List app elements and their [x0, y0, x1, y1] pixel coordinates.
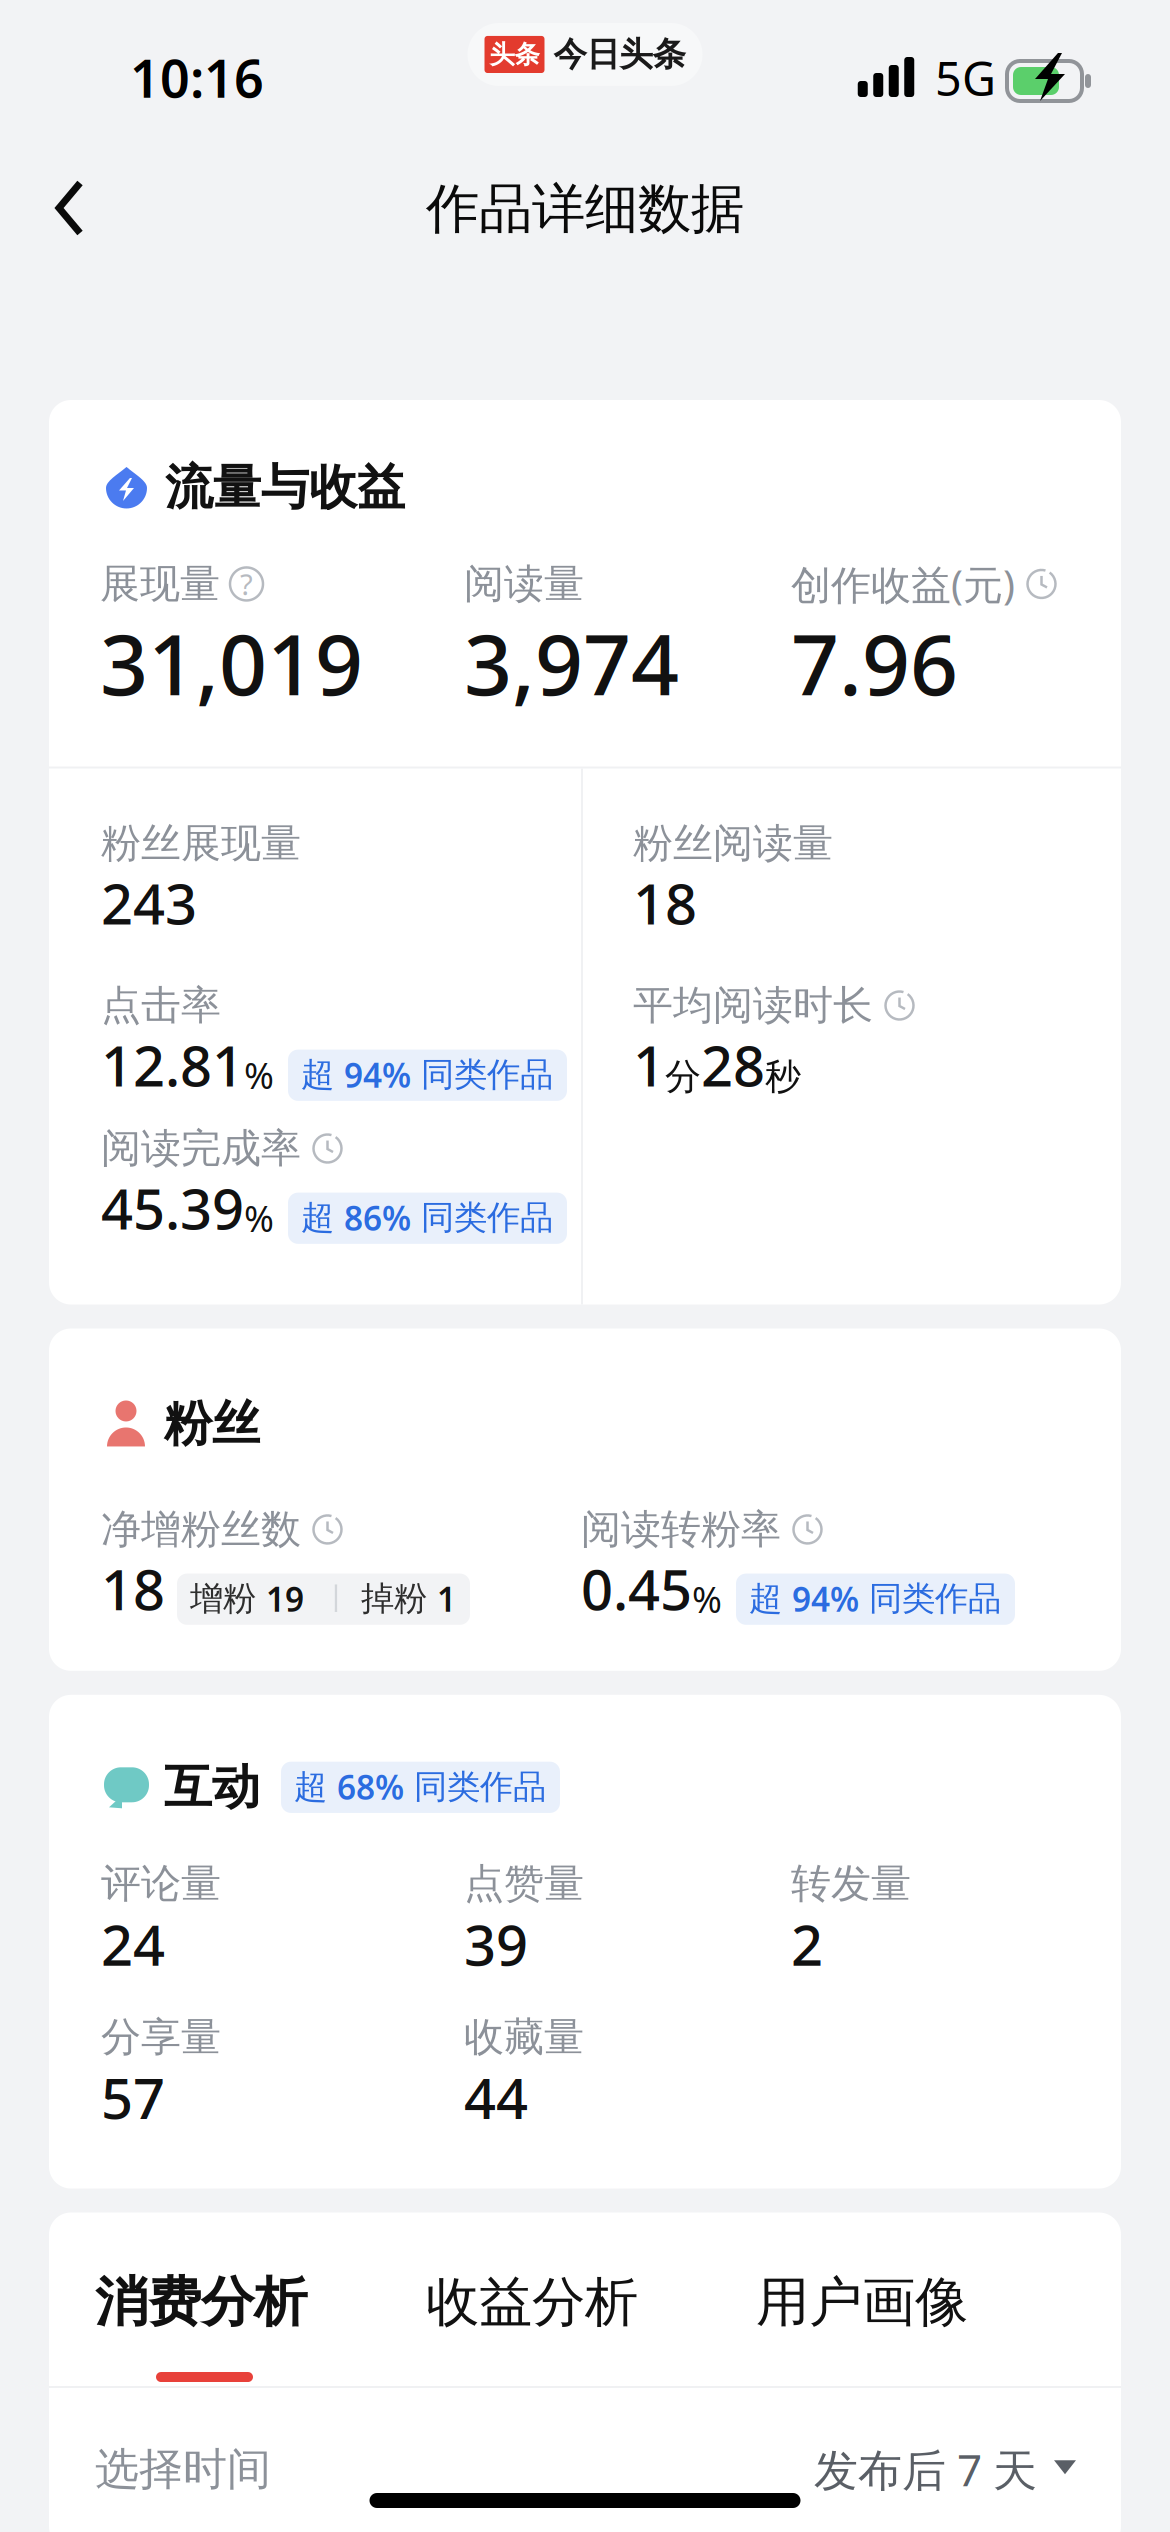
staticText: 0.45	[581, 1551, 692, 1626]
staticText: 丨	[322, 1581, 351, 1617]
staticText: 45.39	[101, 1170, 244, 1245]
staticText: 18	[101, 1551, 165, 1626]
staticText: 39	[464, 1907, 528, 1981]
staticText: 秒	[765, 1055, 801, 1099]
staticText: 24	[101, 1907, 165, 1981]
staticText: 创作收益(元)	[791, 557, 1015, 610]
staticText: 阅读完成率	[101, 1124, 301, 1173]
staticText: 12.81	[101, 1027, 244, 1102]
staticText: ?	[240, 564, 253, 603]
staticText: 增粉	[190, 1578, 266, 1619]
staticText: 阅读量	[464, 559, 584, 608]
staticText: 1	[633, 1027, 665, 1102]
staticText: 2	[791, 1907, 823, 1981]
staticText: 68%	[337, 1765, 404, 1809]
staticText: 平均阅读时长	[633, 981, 873, 1030]
staticText: 收藏量	[464, 2013, 584, 2062]
staticText: 超	[301, 1197, 344, 1238]
staticText: 31,019	[100, 607, 363, 718]
staticText: 19	[266, 1577, 304, 1621]
staticText: 今日头条	[553, 34, 685, 75]
staticText: 展现量	[100, 559, 220, 608]
button[interactable]: 选择时间	[49, 2388, 1121, 2532]
staticText: 243	[101, 865, 197, 940]
staticText: %	[244, 1194, 274, 1242]
staticText: %	[244, 1051, 274, 1099]
staticText: 评论量	[101, 1859, 221, 1908]
staticText: 粉丝阅读量	[633, 819, 833, 868]
staticText: 粉丝展现量	[101, 819, 301, 868]
staticText: 10:16	[130, 43, 264, 112]
staticText: 86%	[344, 1196, 411, 1240]
staticText: 掉粉	[351, 1578, 437, 1619]
staticText: %	[692, 1575, 722, 1623]
staticText: 作品详细数据	[426, 176, 744, 242]
staticText: 消费分析	[95, 2269, 307, 2335]
staticText: 粉丝	[164, 1394, 260, 1453]
staticText: 同类作品	[411, 1054, 553, 1095]
staticText: 94%	[344, 1053, 411, 1097]
staticText: 选择时间	[95, 2442, 271, 2496]
staticText: 18	[633, 865, 697, 940]
staticText: 94%	[792, 1577, 859, 1621]
staticText: 3,974	[464, 607, 679, 718]
staticText: 点击率	[101, 981, 221, 1030]
button[interactable]: Back	[0, 147, 116, 249]
staticText: 收益分析	[426, 2269, 638, 2335]
staticText: 阅读转粉率	[581, 1505, 781, 1554]
staticText: 28	[701, 1027, 765, 1102]
staticText: 57	[101, 2060, 165, 2135]
staticText: 7.96	[791, 607, 958, 718]
staticText: 点赞量	[464, 1859, 584, 1908]
staticText: 转发量	[791, 1859, 911, 1908]
staticText: 同类作品	[404, 1766, 546, 1807]
staticText: 净增粉丝数	[101, 1505, 301, 1554]
staticText: 1	[437, 1577, 456, 1621]
button[interactable]: 消费分析	[49, 2212, 307, 2386]
staticText: 44	[464, 2060, 528, 2135]
staticText: 同类作品	[411, 1197, 553, 1238]
staticText: 同类作品	[859, 1578, 1001, 1619]
staticText: 互动	[164, 1758, 260, 1817]
button[interactable]: 用户画像	[638, 2212, 968, 2386]
staticText: 头条	[489, 39, 539, 70]
staticText: 发布后 7 天	[814, 2440, 1037, 2498]
staticText: 超	[749, 1578, 792, 1619]
staticText: 超	[294, 1766, 337, 1807]
staticText: 分	[665, 1055, 701, 1099]
staticText: 5G	[935, 47, 996, 109]
staticText: 超	[301, 1054, 344, 1095]
staticText: 流量与收益	[165, 458, 405, 517]
staticText: 分享量	[101, 2013, 221, 2062]
button[interactable]: 收益分析	[307, 2212, 638, 2386]
staticText: 用户画像	[756, 2269, 968, 2335]
